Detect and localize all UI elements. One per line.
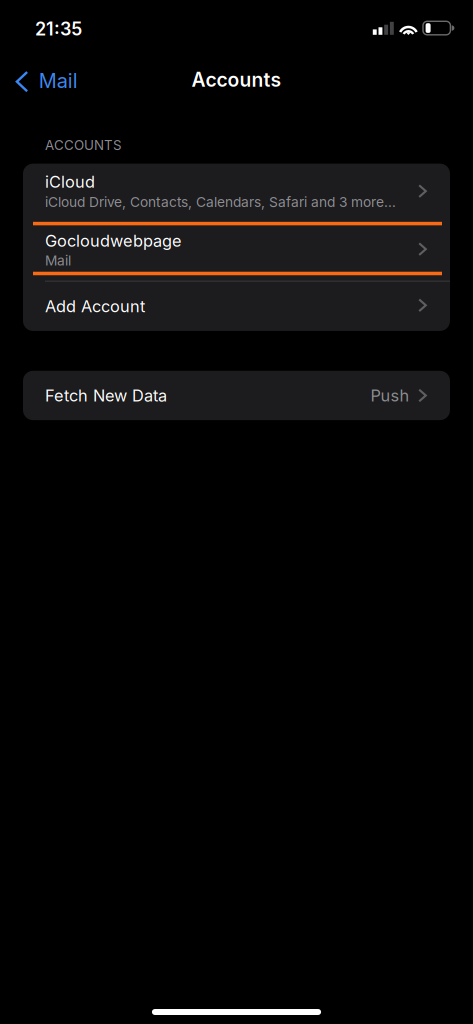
staticText: Mail: [39, 69, 78, 93]
staticText: iCloud: [45, 172, 95, 192]
staticText: 21:35: [35, 18, 82, 40]
staticText: Fetch New Data: [45, 386, 167, 405]
button[interactable]: Fetch New Data: [23, 371, 450, 420]
button[interactable]: iCloud: [23, 164, 450, 222]
button[interactable]: Gocloudwebpage: [23, 222, 450, 281]
staticText: iCloud Drive, Contacts, Calendars, Safar…: [45, 194, 396, 210]
staticText: ACCOUNTS: [45, 137, 122, 153]
staticText: Mail: [45, 252, 71, 269]
button[interactable]: Mail: [0, 56, 473, 96]
staticText: Add Account: [45, 296, 145, 316]
button[interactable]: Add Account: [23, 282, 450, 331]
staticText: Push: [370, 386, 409, 405]
staticText: Accounts: [191, 68, 281, 91]
staticText: Gocloudwebpage: [45, 231, 182, 251]
